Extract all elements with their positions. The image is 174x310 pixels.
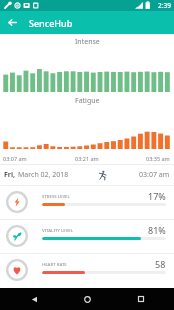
staticText: Fatigue: [75, 96, 100, 106]
button[interactable]: VITALITY LEVEL: [0, 220, 174, 253]
button[interactable]: Back: [14, 288, 54, 310]
staticText: Intense: [75, 37, 100, 47]
button[interactable]: Back: [0, 11, 24, 34]
staticText: Fri,: [4, 170, 16, 180]
staticText: March 02, 2018: [18, 170, 69, 180]
staticText: 58: [155, 258, 166, 270]
staticText: 2:39: [158, 1, 171, 10]
staticText: SenceHub: [29, 17, 73, 29]
button[interactable]: HEART RATE: [0, 254, 174, 287]
button[interactable]: STRESS LEVEL: [0, 186, 174, 219]
staticText: 17%: [148, 190, 166, 202]
staticText: 03:07 am: [139, 170, 170, 180]
button[interactable]: Recent apps: [121, 288, 161, 310]
staticText: VITALITY LEVEL: [42, 227, 73, 233]
staticText: STRESS LEVEL: [42, 193, 70, 199]
button[interactable]: Home: [67, 288, 107, 310]
staticText: 03:21 am: [75, 155, 99, 162]
staticText: HEART RATE: [42, 261, 67, 267]
staticText: 03:07 am: [3, 155, 27, 162]
staticText: 03:35 am: [146, 155, 170, 162]
staticText: 81%: [148, 224, 166, 236]
